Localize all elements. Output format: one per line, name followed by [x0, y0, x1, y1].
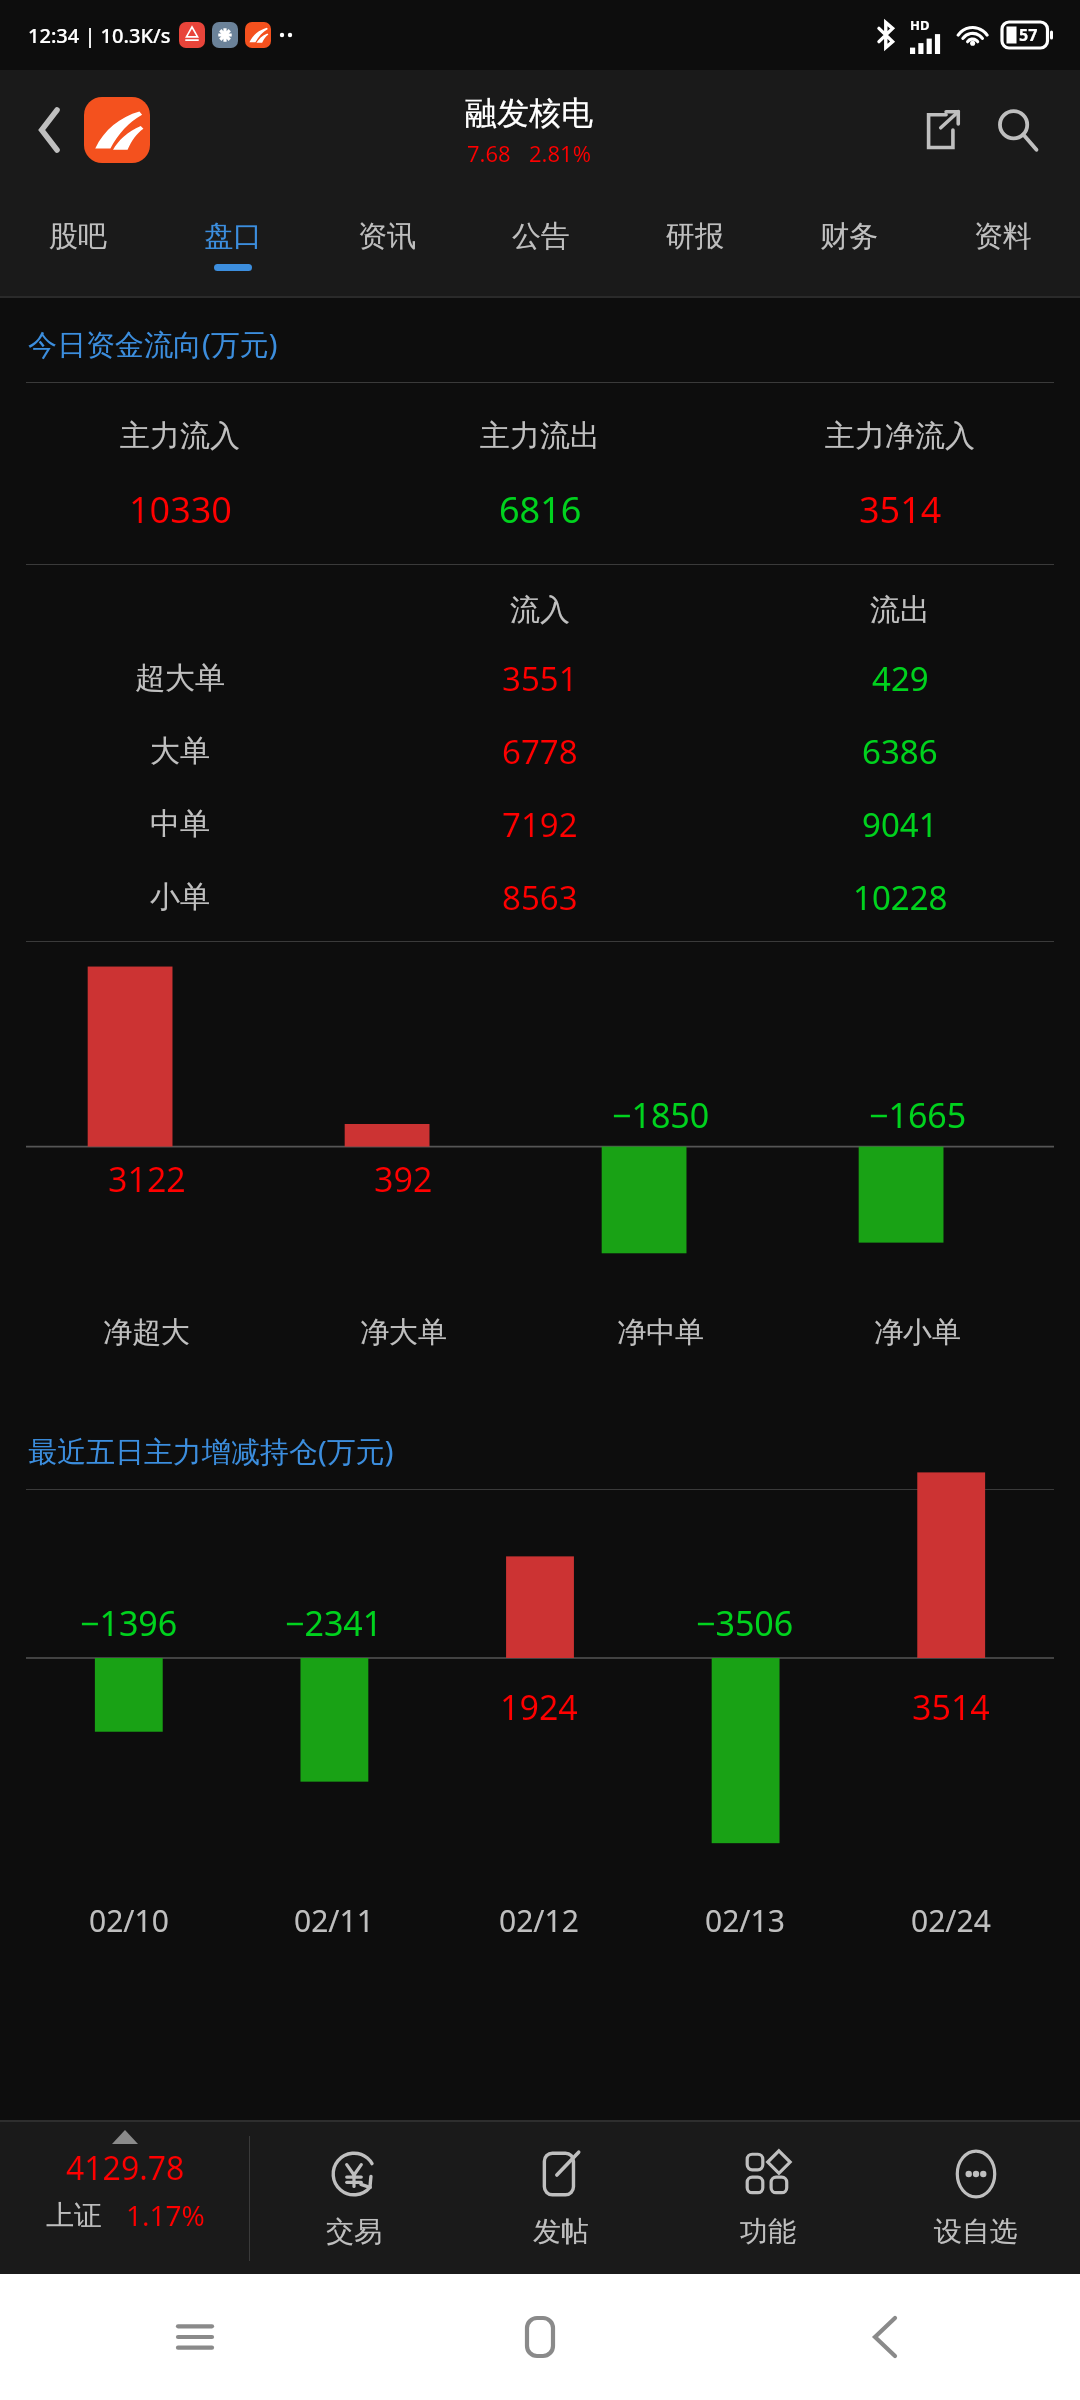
staticText: −1665 [869, 1092, 967, 1138]
staticText: 392 [374, 1156, 433, 1202]
staticText: 发帖 [533, 2214, 589, 2249]
button[interactable]: 盘口 [155, 190, 310, 298]
staticText: 02/24 [911, 1900, 991, 1941]
staticText: 6816 [499, 485, 582, 534]
staticText: 3551 [502, 656, 578, 701]
staticText: 3122 [108, 1156, 186, 1202]
staticText: 8563 [502, 875, 578, 920]
staticText: 10330 [129, 485, 232, 534]
staticText: −2341 [285, 1600, 383, 1646]
staticText: 融发核电 [465, 93, 593, 133]
staticText: 02/12 [499, 1900, 579, 1941]
staticText: 主力净流入 [825, 417, 975, 455]
staticText: 主力流出 [480, 417, 600, 455]
staticText: 最近五日主力增减持仓(万元) [28, 1431, 394, 1471]
staticText: 主力流入 [120, 417, 240, 455]
button[interactable]: 返回 [840, 2292, 930, 2382]
staticText: 7192 [502, 802, 578, 847]
button[interactable]: 资讯 [310, 190, 464, 298]
staticText: 交易 [326, 2214, 382, 2249]
staticText: 流入 [510, 591, 570, 629]
staticText: 429 [872, 656, 929, 701]
button[interactable]: 功能 [664, 2122, 872, 2274]
button[interactable]: 交易 [250, 2122, 457, 2274]
staticText: 1.17% [126, 2196, 205, 2234]
staticText: 资讯 [358, 218, 416, 255]
staticText: 财务 [820, 218, 878, 255]
staticText: 10228 [853, 875, 948, 920]
staticText: 2.81% [529, 138, 591, 168]
staticText: 盘口 [204, 218, 262, 255]
staticText: 设自选 [934, 2214, 1018, 2249]
button[interactable]: 财务 [772, 190, 926, 298]
staticText: 今日资金流向(万元) [28, 324, 278, 364]
staticText: 02/11 [294, 1900, 374, 1941]
staticText: 3514 [912, 1684, 990, 1730]
staticText: 7.68 [467, 138, 511, 168]
staticText: 中单 [150, 805, 210, 843]
button[interactable]: 分享 [908, 98, 972, 162]
staticText: 超大单 [135, 659, 225, 697]
button[interactable]: 股吧 [0, 190, 155, 298]
staticText: 研报 [666, 218, 724, 255]
button[interactable]: 4129.78 [0, 2122, 250, 2274]
button[interactable]: 最近任务 [150, 2292, 240, 2382]
staticText: 功能 [740, 2214, 796, 2249]
staticText: 小单 [150, 878, 210, 916]
staticText: 02/10 [89, 1900, 169, 1941]
button[interactable]: 主屏幕 [495, 2292, 585, 2382]
button[interactable]: 公告 [464, 190, 618, 298]
staticText: −1850 [612, 1092, 710, 1138]
button[interactable]: 资料 [926, 190, 1080, 298]
staticText: 流出 [870, 591, 930, 629]
staticText: 大单 [150, 732, 210, 770]
button[interactable]: 研报 [618, 190, 772, 298]
staticText: 上证 [46, 2198, 102, 2233]
staticText: 02/13 [705, 1900, 785, 1941]
staticText: 3514 [859, 485, 942, 534]
staticText: 12:34 | 10.3K/s [28, 22, 171, 49]
staticText: 57 [1019, 24, 1038, 46]
button[interactable]: 搜索 [986, 98, 1050, 162]
staticText: 净中单 [617, 1314, 704, 1351]
staticText: 6386 [862, 729, 938, 774]
staticText: −3506 [696, 1600, 794, 1646]
staticText: 股吧 [49, 218, 107, 255]
staticText: 4129.78 [66, 2146, 185, 2190]
button[interactable]: 返回 [22, 102, 78, 158]
staticText: −1396 [80, 1600, 178, 1646]
staticText: 净超大 [103, 1314, 190, 1351]
staticText: 净大单 [360, 1314, 447, 1351]
button[interactable]: 发帖 [457, 2122, 664, 2274]
staticText: 资料 [974, 218, 1032, 255]
staticText: HD [910, 16, 930, 34]
staticText: 6778 [502, 729, 578, 774]
staticText: 9041 [862, 802, 938, 847]
staticText: 公告 [512, 218, 570, 255]
staticText: 1924 [500, 1684, 578, 1730]
button[interactable]: 设自选 [872, 2122, 1080, 2274]
staticText: 净小单 [874, 1314, 961, 1351]
